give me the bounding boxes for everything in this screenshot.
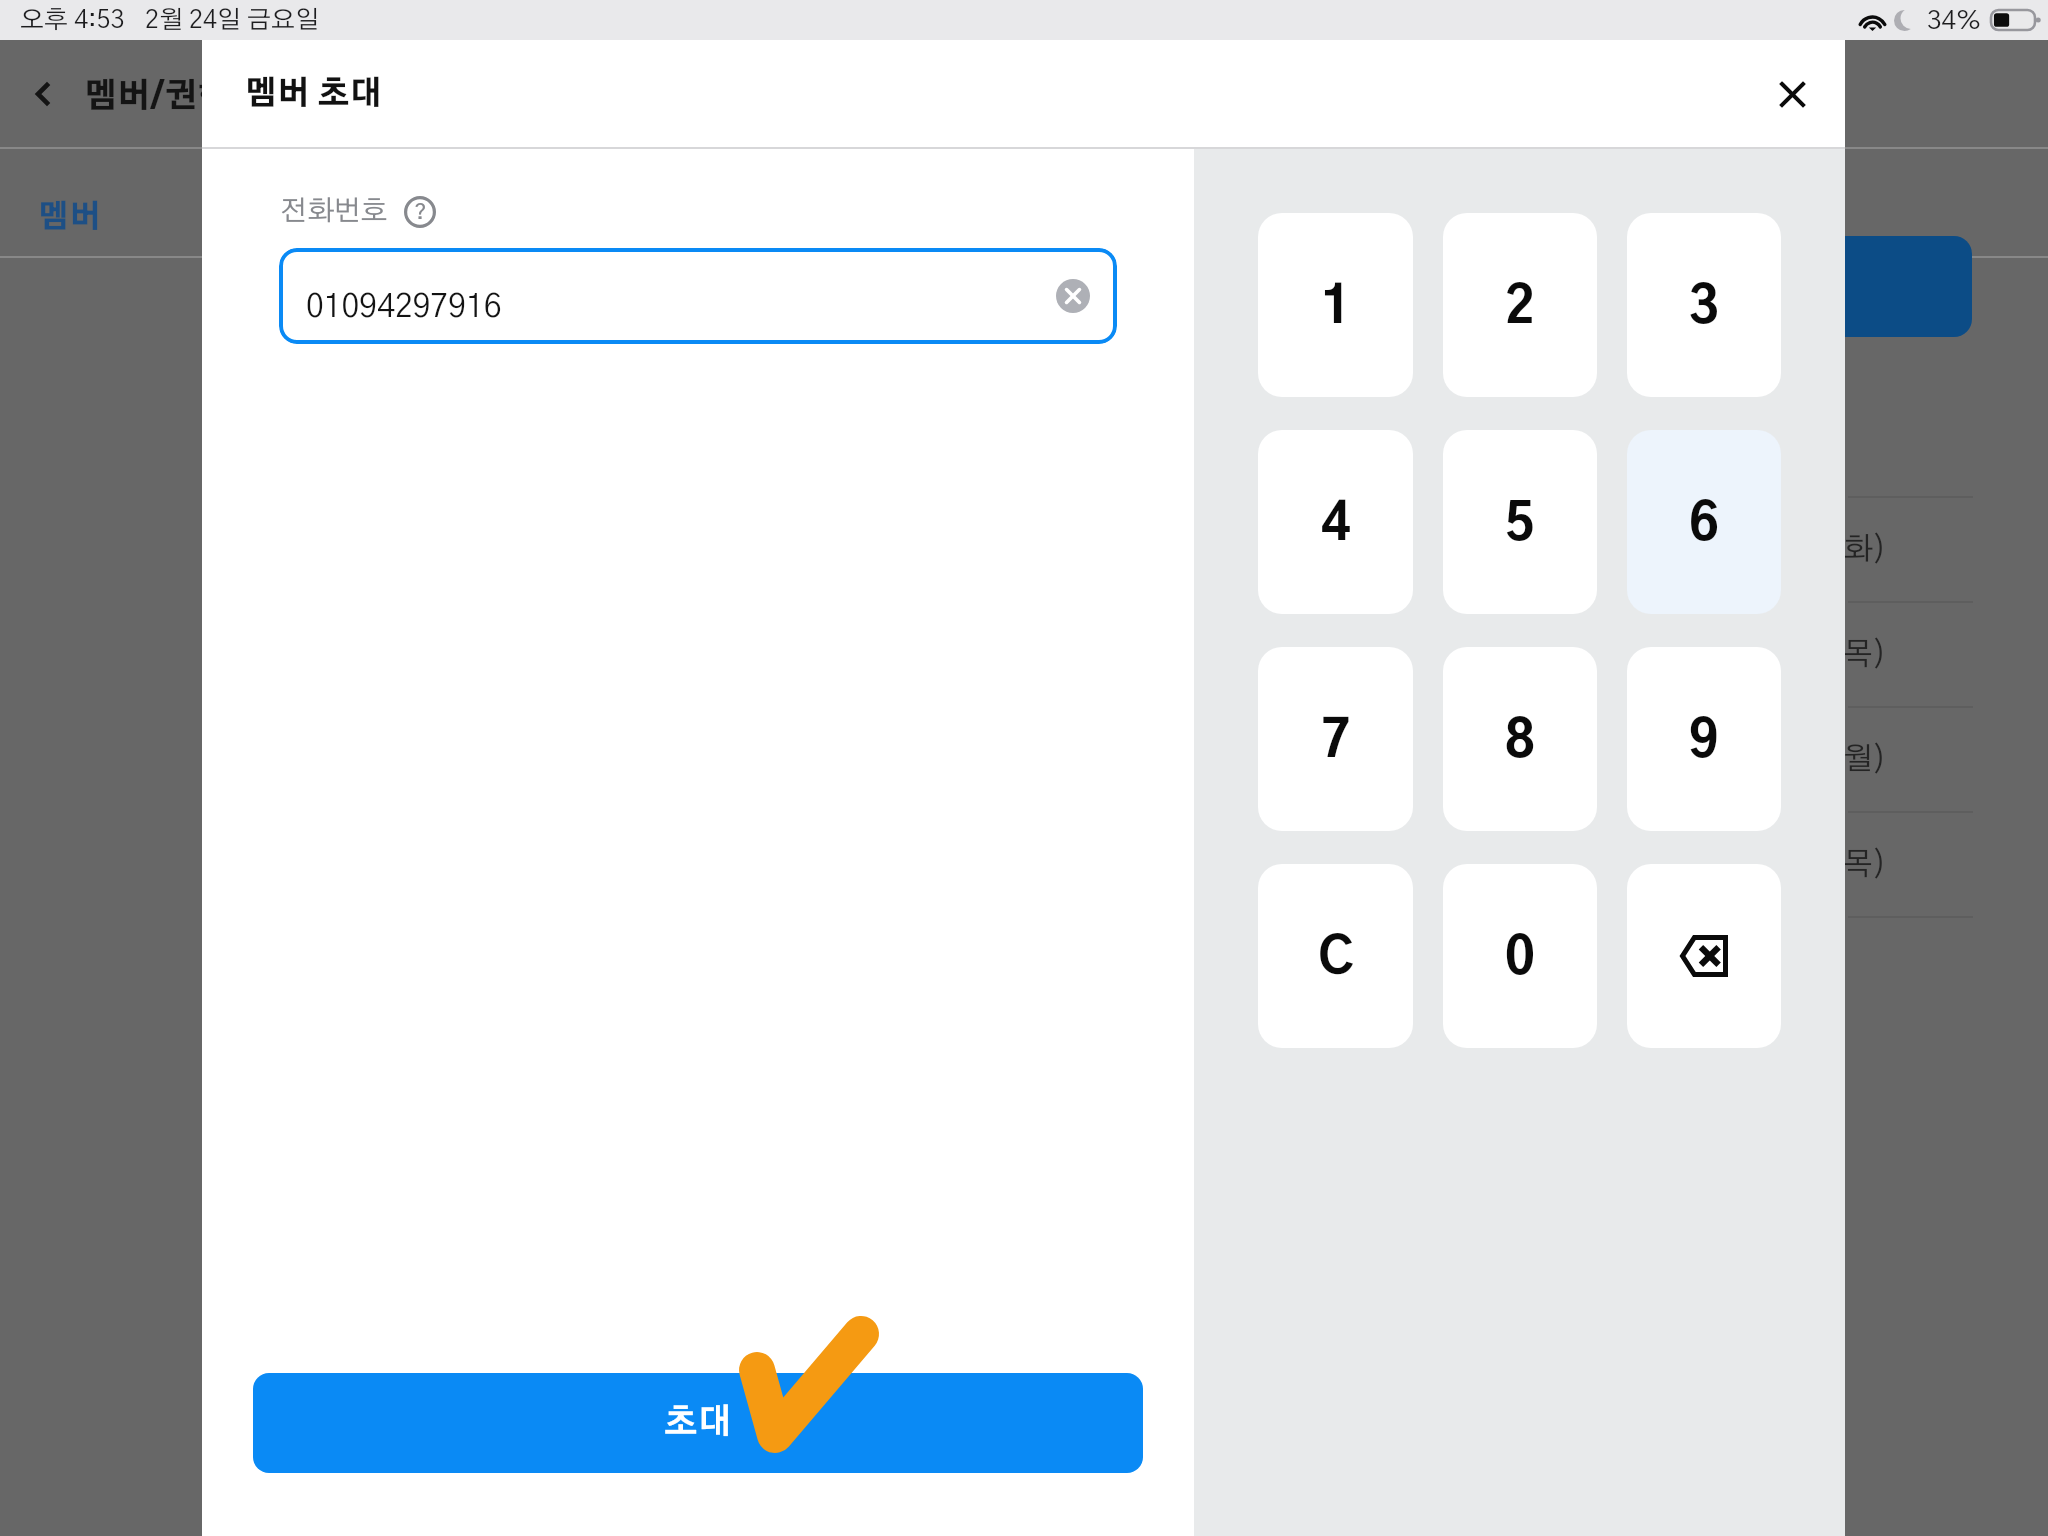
staticText: ? xyxy=(414,201,427,223)
button[interactable]: 1 xyxy=(1258,213,1413,397)
button[interactable]: 지우기 xyxy=(1056,279,1090,313)
staticText: 0 xyxy=(1505,934,1535,984)
button[interactable]: 8 xyxy=(1443,647,1597,831)
staticText: 1 xyxy=(1321,283,1351,333)
staticText: 월) xyxy=(1843,744,1887,775)
button[interactable]: 01094297916 xyxy=(279,248,1117,344)
staticText: 멤버 초대 xyxy=(245,78,382,110)
button[interactable]: 2 xyxy=(1443,213,1597,397)
button[interactable]: 5 xyxy=(1443,430,1597,614)
button[interactable]: 닫기 xyxy=(1760,62,1824,126)
staticText: 2 xyxy=(1505,283,1535,333)
staticText: C xyxy=(1318,934,1354,984)
button[interactable]: 지우기 xyxy=(1627,864,1781,1048)
button[interactable]: 9 xyxy=(1627,647,1781,831)
staticText: 멤버/권한 xyxy=(84,81,231,114)
button[interactable]: 6 xyxy=(1627,430,1781,614)
staticText: 01094297916 xyxy=(306,291,502,323)
staticText: 오후 4:53 xyxy=(20,8,125,33)
staticText: 8 xyxy=(1505,717,1535,767)
staticText: 6 xyxy=(1689,500,1719,550)
staticText: 초대 xyxy=(664,1406,732,1440)
button[interactable]: 4 xyxy=(1258,430,1413,614)
button[interactable]: 초대 xyxy=(253,1373,1143,1473)
staticText: 목) xyxy=(1843,849,1887,880)
staticText: 목) xyxy=(1843,639,1887,670)
button[interactable]: 3 xyxy=(1627,213,1781,397)
button[interactable]: 0 xyxy=(1443,864,1597,1048)
staticText: 2월 24일 금요일 xyxy=(145,8,319,33)
staticText: 멤버 xyxy=(38,202,101,233)
staticText: 7 xyxy=(1321,717,1351,767)
staticText: 전화번호 xyxy=(280,198,388,226)
staticText: 4 xyxy=(1321,500,1351,550)
button[interactable]: 뒤로 xyxy=(18,70,66,118)
staticText: 34% xyxy=(1927,8,1982,34)
button[interactable]: 7 xyxy=(1258,647,1413,831)
staticText: 3 xyxy=(1689,283,1719,333)
staticText: 9 xyxy=(1689,717,1719,767)
staticText: 5 xyxy=(1505,500,1535,550)
staticText: 화) xyxy=(1843,534,1887,565)
button[interactable]: C xyxy=(1258,864,1413,1048)
button[interactable]: 도움말 xyxy=(404,196,436,228)
